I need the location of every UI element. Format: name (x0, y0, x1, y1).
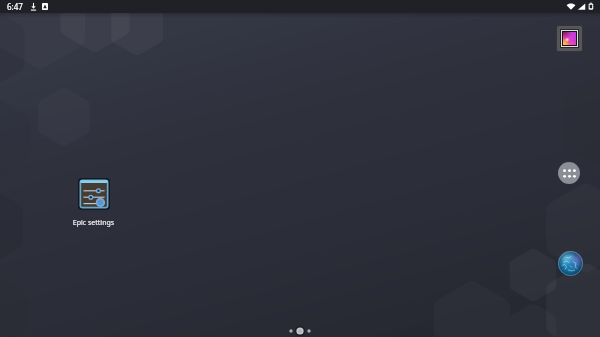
button[interactable]: Gallery (556, 25, 583, 52)
button[interactable]: Epic settings (66, 178, 121, 228)
button[interactable]: Browser (558, 251, 583, 276)
staticText: 6:47 (7, 1, 23, 12)
button[interactable]: Apps (558, 162, 580, 184)
staticText: Epic settings (66, 218, 121, 228)
